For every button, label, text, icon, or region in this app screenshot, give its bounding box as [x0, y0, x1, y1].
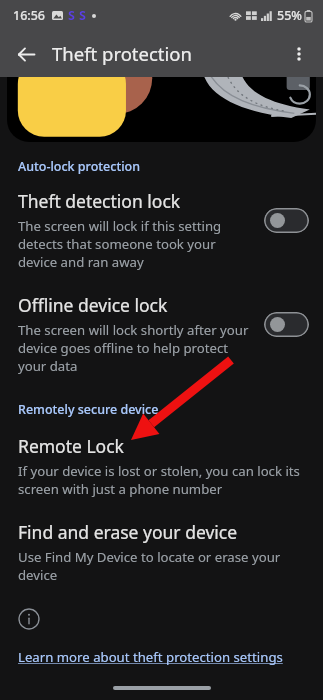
staticText: Theft detection lock [18, 189, 181, 213]
button[interactable]: Back [8, 36, 44, 72]
staticText: Use Find My Device to locate or erase yo… [18, 548, 307, 584]
button[interactable]: Learn more about theft protection settin… [18, 648, 283, 666]
button[interactable]: Find and erase your device [0, 520, 323, 584]
staticText: The screen will lock if this setting det… [18, 217, 254, 271]
staticText: Find and erase your device [18, 520, 238, 544]
button[interactable]: Toggle [264, 312, 309, 337]
staticText: 55% [277, 7, 302, 24]
staticText: Learn more about theft protection settin… [18, 648, 283, 666]
button[interactable]: Offline device lock [0, 293, 323, 375]
staticText: 16:56 [13, 7, 46, 24]
staticText: Auto-lock protection [18, 158, 141, 175]
staticText: Offline device lock [18, 293, 168, 317]
button[interactable]: Toggle [264, 208, 309, 233]
staticText: Remotely secure device [18, 401, 159, 418]
button[interactable]: Theft detection lock [0, 189, 323, 271]
staticText: If your device is lost or stolen, you ca… [18, 462, 307, 498]
staticText: The screen will lock shortly after your … [18, 321, 254, 375]
button[interactable]: Info [18, 608, 40, 630]
button[interactable]: More options [281, 36, 317, 72]
staticText: Theft protection [52, 41, 192, 66]
staticText: S [68, 7, 75, 24]
staticText: S [79, 7, 86, 24]
staticText: Remote Lock [18, 434, 124, 458]
button[interactable]: Remote Lock [0, 434, 323, 498]
